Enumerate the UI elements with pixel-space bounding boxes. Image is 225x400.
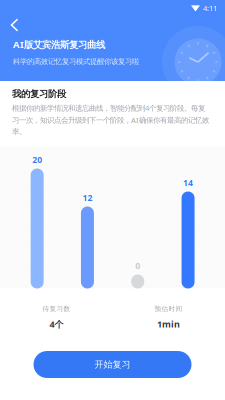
staticText: 0	[135, 260, 140, 271]
staticText: 我的复习阶段	[12, 88, 66, 100]
staticText: 预估时间	[154, 304, 182, 313]
staticText: 20	[32, 154, 42, 165]
staticText: 科学的高效记忆复习模式提醒你该复习啦	[13, 57, 139, 66]
staticText: 待复习数	[42, 304, 70, 313]
staticText: 开始复习	[94, 359, 130, 370]
staticText: AI版艾宾浩斯复习曲线	[13, 38, 105, 51]
staticText: 12	[82, 192, 92, 203]
button[interactable]: 开始复习	[33, 351, 191, 378]
staticText: 1min	[157, 318, 180, 330]
staticText: 根据你的新学情况和遗忘曲线，智能分配到4个复习阶段。每复习一次，知识点会升级到下…	[12, 103, 209, 136]
staticText: 14	[183, 177, 193, 188]
staticText: 4:11	[203, 3, 217, 13]
button[interactable]: Back	[0, 16, 38, 34]
staticText: 4个	[49, 318, 63, 330]
